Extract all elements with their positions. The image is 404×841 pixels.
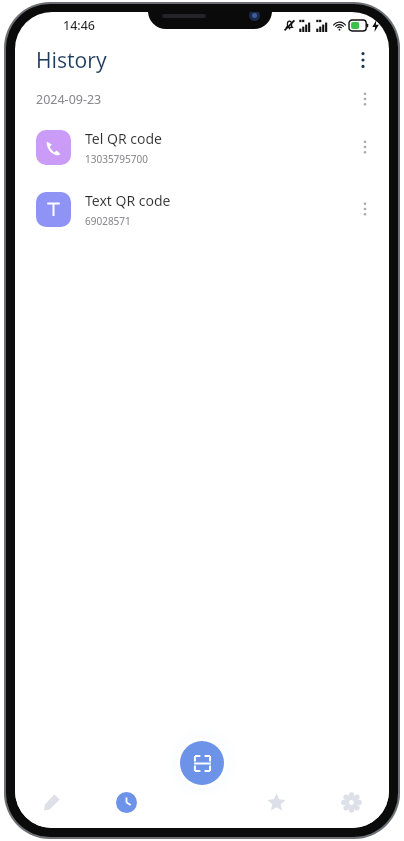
- staticText: 14:46: [63, 17, 96, 34]
- button[interactable]: Create: [15, 776, 89, 828]
- button[interactable]: Item options: [347, 129, 383, 165]
- button[interactable]: Item options: [347, 191, 383, 227]
- button[interactable]: Settings: [314, 776, 389, 828]
- button[interactable]: Favorites: [239, 776, 314, 828]
- staticText: 2024-09-23: [36, 91, 102, 108]
- button[interactable]: More options: [343, 40, 383, 80]
- button[interactable]: Text QR code: [15, 178, 389, 240]
- button[interactable]: Date options: [347, 82, 383, 116]
- staticText: Tel QR code: [85, 129, 162, 148]
- staticText: 69028571: [85, 214, 131, 228]
- button[interactable]: History: [89, 776, 164, 828]
- button[interactable]: Scan QR code: [180, 741, 224, 785]
- staticText: History: [36, 46, 107, 75]
- staticText: 13035795700: [85, 152, 148, 166]
- button[interactable]: Tel QR code: [15, 116, 389, 178]
- staticText: Text QR code: [85, 191, 171, 210]
